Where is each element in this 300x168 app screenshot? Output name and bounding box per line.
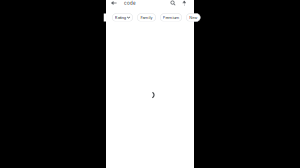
button[interactable]: Rating [112,13,133,21]
button[interactable]: Family [137,13,156,21]
staticText: Rating [115,15,126,20]
button[interactable]: Premium [160,13,182,21]
staticText: Premium [162,15,179,20]
button[interactable]: New [186,13,200,21]
button[interactable]: Voice search [182,0,186,6]
staticText: code [124,0,136,6]
staticText: Family [140,15,152,20]
button[interactable]: Search [170,0,176,6]
button[interactable]: Back [110,0,117,6]
staticText: New [189,15,197,20]
